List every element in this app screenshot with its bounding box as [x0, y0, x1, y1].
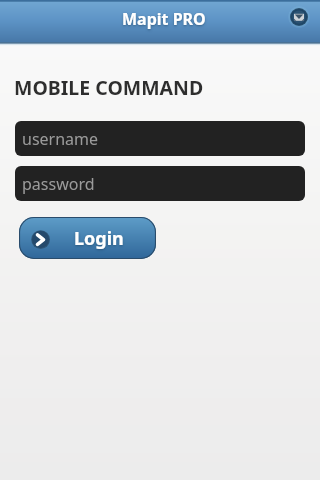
button[interactable]: password	[15, 166, 305, 201]
staticText: MOBILE COMMAND	[14, 74, 204, 101]
staticText: Login	[74, 226, 124, 251]
staticText: Mapit PRO	[122, 8, 206, 30]
staticText: password	[22, 173, 95, 195]
button[interactable]: username	[15, 121, 305, 156]
button[interactable]: Messages	[285, 3, 313, 31]
staticText: username	[22, 128, 99, 150]
button[interactable]: Login	[19, 217, 156, 259]
